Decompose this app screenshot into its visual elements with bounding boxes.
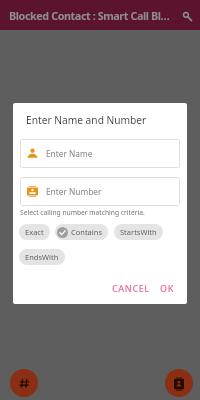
staticText: Contains [71,227,102,237]
button[interactable]: Enter Number [20,177,180,206]
button[interactable]: Exact [19,224,50,240]
button[interactable]: OK [155,278,179,298]
staticText: Enter Name and Number [26,113,147,127]
button[interactable]: Block number pattern [10,369,38,397]
staticText: CANCEL [112,282,150,294]
staticText: Exact [25,227,44,237]
staticText: Blocked Contact : Smart Call Bl… [9,8,170,23]
button[interactable]: StartsWith [114,224,163,240]
button[interactable]: Add contact [165,369,193,397]
button[interactable]: Search [175,4,197,26]
button[interactable]: Enter Name [20,139,180,168]
staticText: StartsWith [120,227,157,237]
button[interactable]: CANCEL [107,278,155,298]
staticText: Enter Name [46,148,93,159]
button[interactable]: EndsWith [19,249,65,265]
staticText: Enter Number [46,186,102,197]
staticText: Select calling number matching criteria. [20,208,145,217]
staticText: OK [160,282,174,294]
button[interactable]: Contains [55,224,108,240]
staticText: EndsWith [25,252,59,262]
